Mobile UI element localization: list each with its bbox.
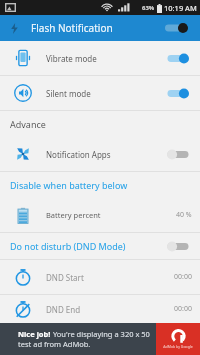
button[interactable]: Notification Apps bbox=[0, 137, 200, 171]
button[interactable]: DND End bbox=[0, 295, 200, 323]
staticText: 10:19 AM bbox=[164, 3, 197, 13]
button[interactable]: Silent mode bbox=[0, 76, 200, 110]
button[interactable]: Flash Notification bbox=[0, 15, 200, 41]
staticText: 40 % bbox=[176, 210, 192, 220]
staticText: Battery percent bbox=[46, 210, 101, 220]
staticText: test ad from AdMob. bbox=[18, 339, 91, 349]
button[interactable]: Flash notification master switch bbox=[161, 20, 191, 36]
staticText: 63% bbox=[142, 4, 155, 12]
button[interactable]: Toggle off bbox=[164, 239, 192, 254]
staticText: Vibrate mode bbox=[46, 53, 97, 64]
staticText: Disable when battery below bbox=[10, 179, 128, 191]
staticText: Flash Notification bbox=[31, 21, 113, 35]
staticText: AdMob by Google bbox=[163, 344, 193, 349]
staticText: DND End bbox=[46, 304, 81, 315]
button[interactable]: Toggle off bbox=[164, 147, 192, 162]
staticText: Do not disturb (DND Mode) bbox=[10, 240, 126, 252]
staticText: Nice job! bbox=[18, 329, 51, 339]
button[interactable]: Toggle on bbox=[164, 51, 192, 66]
button[interactable]: Nice job! bbox=[0, 323, 200, 355]
staticText: DND Start bbox=[46, 272, 84, 283]
button[interactable]: DND Start bbox=[0, 260, 200, 294]
staticText: Notification Apps bbox=[46, 149, 111, 160]
button[interactable]: AdMob by Google bbox=[156, 323, 200, 355]
button[interactable]: Toggle on bbox=[164, 86, 192, 101]
staticText: You're displaying a 320 x 50 bbox=[51, 329, 150, 339]
staticText: Silent mode bbox=[46, 88, 91, 99]
staticText: 00:00 bbox=[174, 272, 192, 282]
button[interactable]: Vibrate mode bbox=[0, 41, 200, 75]
staticText: 00:00 bbox=[174, 304, 192, 314]
staticText: Advance bbox=[10, 118, 46, 130]
button[interactable]: Battery percent bbox=[0, 198, 200, 232]
button[interactable]: Do not disturb (DND Mode) bbox=[0, 233, 200, 259]
